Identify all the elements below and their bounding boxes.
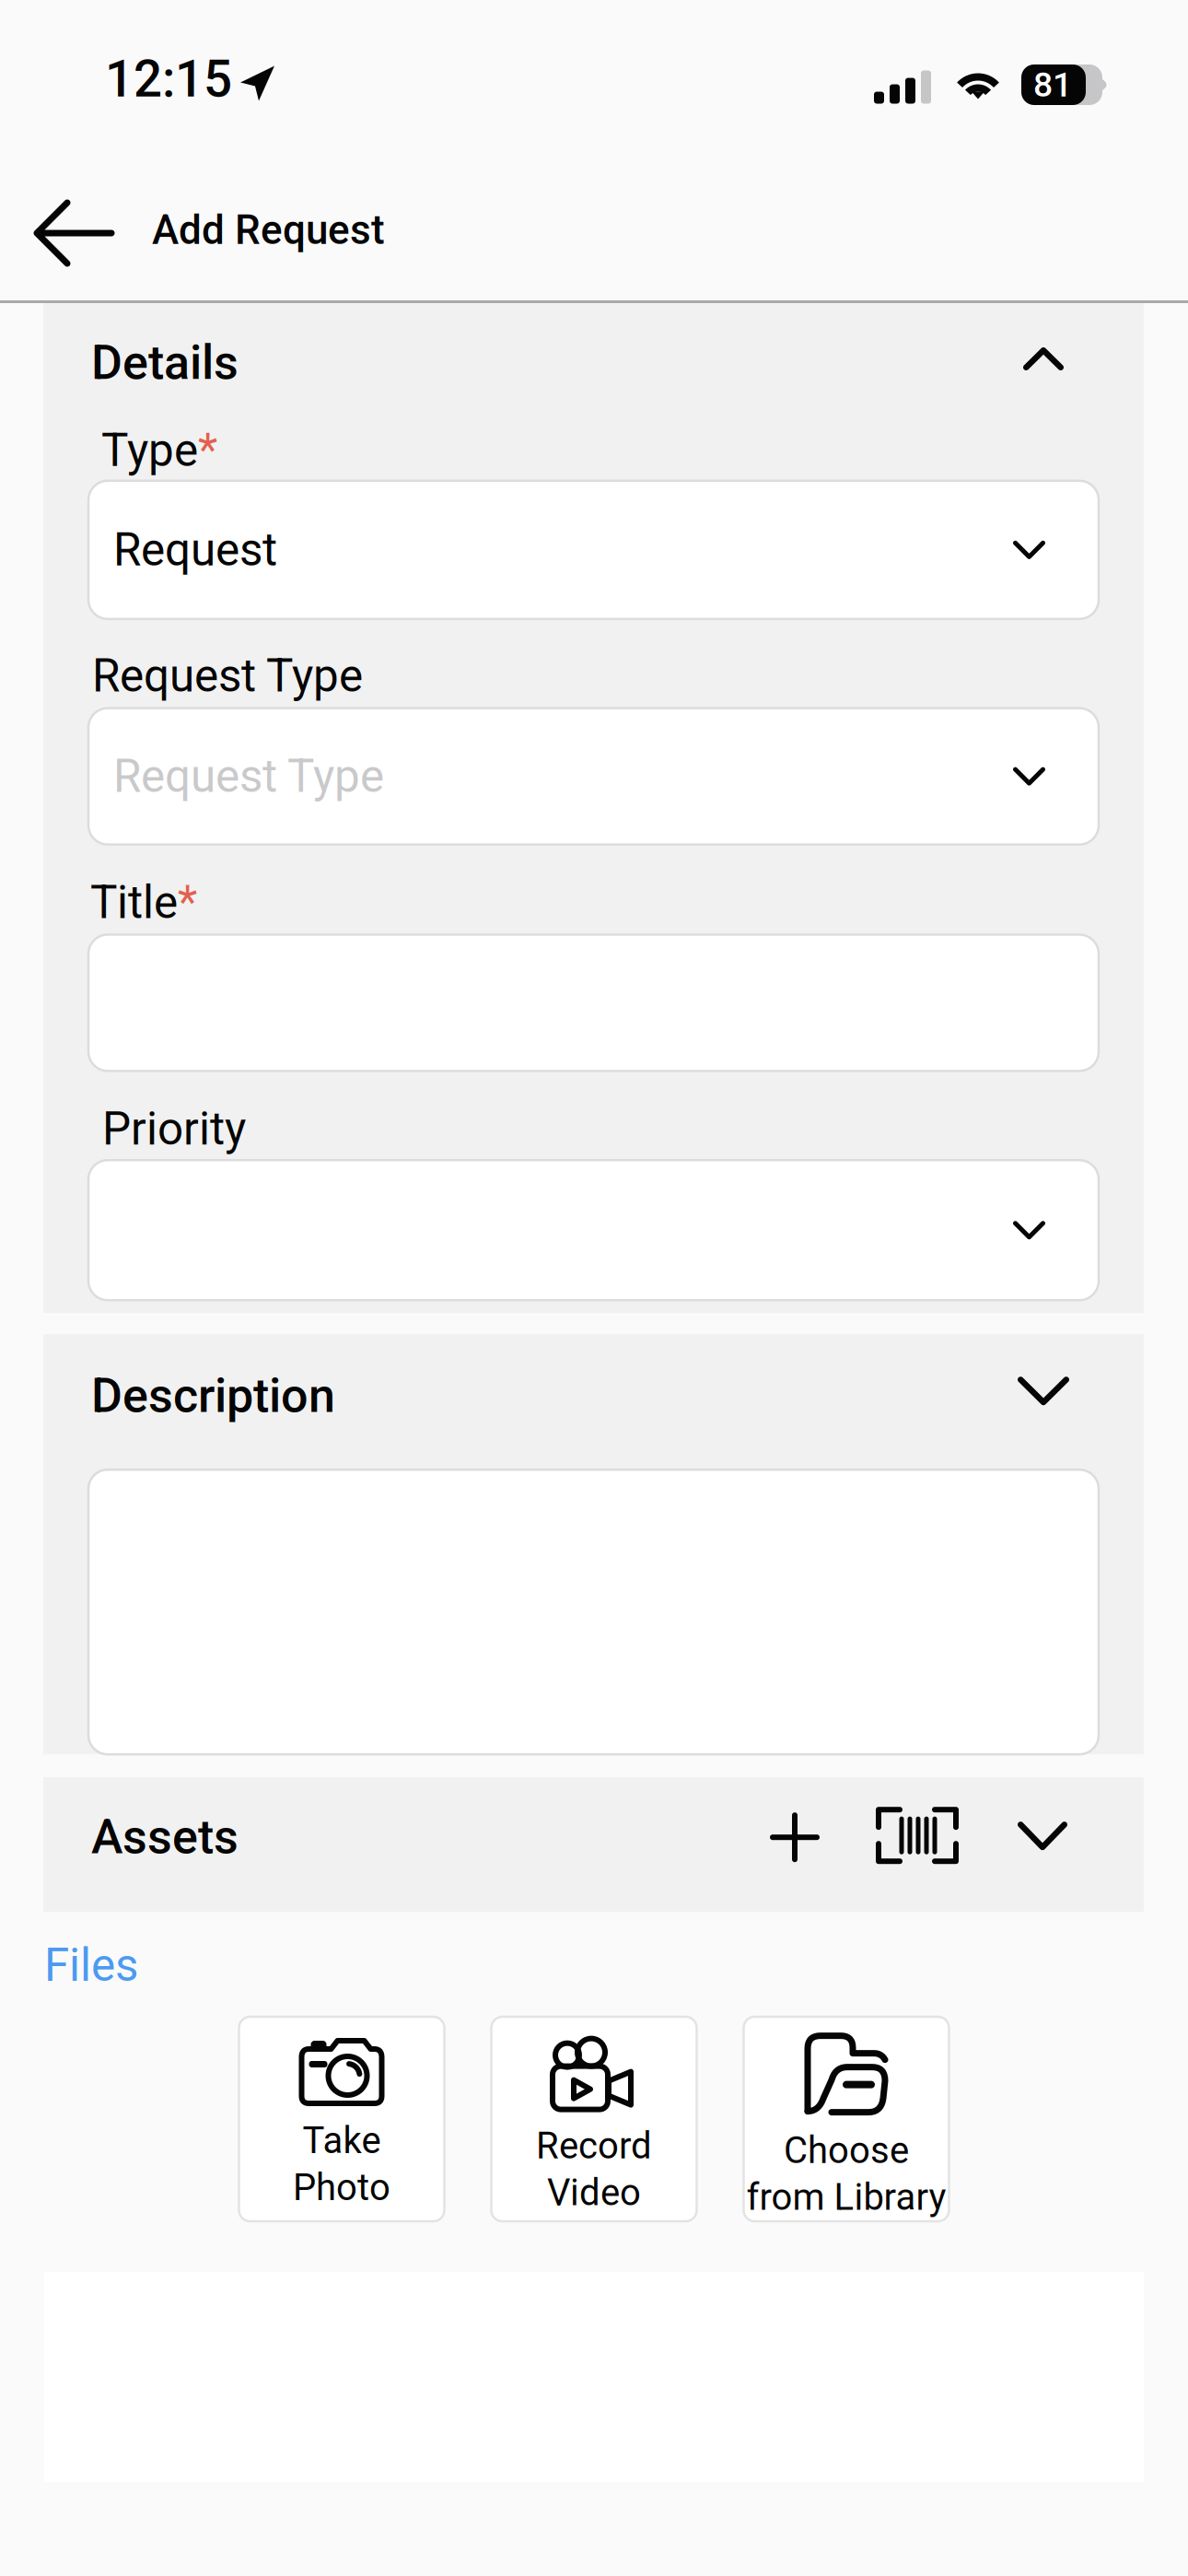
staticText: Files [44,1939,138,1992]
staticText: * [178,876,197,929]
staticText: from Library [746,2176,946,2219]
staticText: 81 [1033,65,1072,105]
button[interactable] [88,935,1099,1071]
button[interactable]: Choose [744,2017,949,2221]
staticText: Type [101,424,198,477]
staticText: Title [90,876,178,929]
staticText: Request Type [92,649,363,703]
staticText: Request [113,523,277,576]
staticText: Take [303,2119,381,2162]
button[interactable]: Record [491,2017,697,2221]
staticText: Description [91,1367,335,1424]
button[interactable]: Scan barcode [865,1804,970,1875]
staticText: Photo [293,2166,390,2209]
staticText: Record [536,2124,652,2167]
button[interactable]: Request [88,481,1099,619]
button[interactable]: Add asset [760,1804,830,1872]
staticText: 12:15 [105,50,232,109]
staticText: * [198,424,217,477]
button[interactable]: Expand Assets [1007,1804,1078,1861]
button[interactable]: Back [0,188,152,278]
staticText: Choose [784,2129,909,2172]
staticText: Assets [91,1809,239,1865]
staticText: Details [91,334,239,391]
button[interactable] [88,1160,1099,1300]
staticText: Video [547,2171,641,2214]
button[interactable]: Take [239,2017,444,2221]
staticText: Request Type [113,750,384,803]
staticText: Priority [102,1102,246,1156]
button[interactable]: Request Type [88,708,1099,844]
staticText: Add Request [152,206,385,254]
button[interactable]: Collapse Details [1010,334,1077,391]
button[interactable]: Expand Description [1005,1367,1082,1422]
